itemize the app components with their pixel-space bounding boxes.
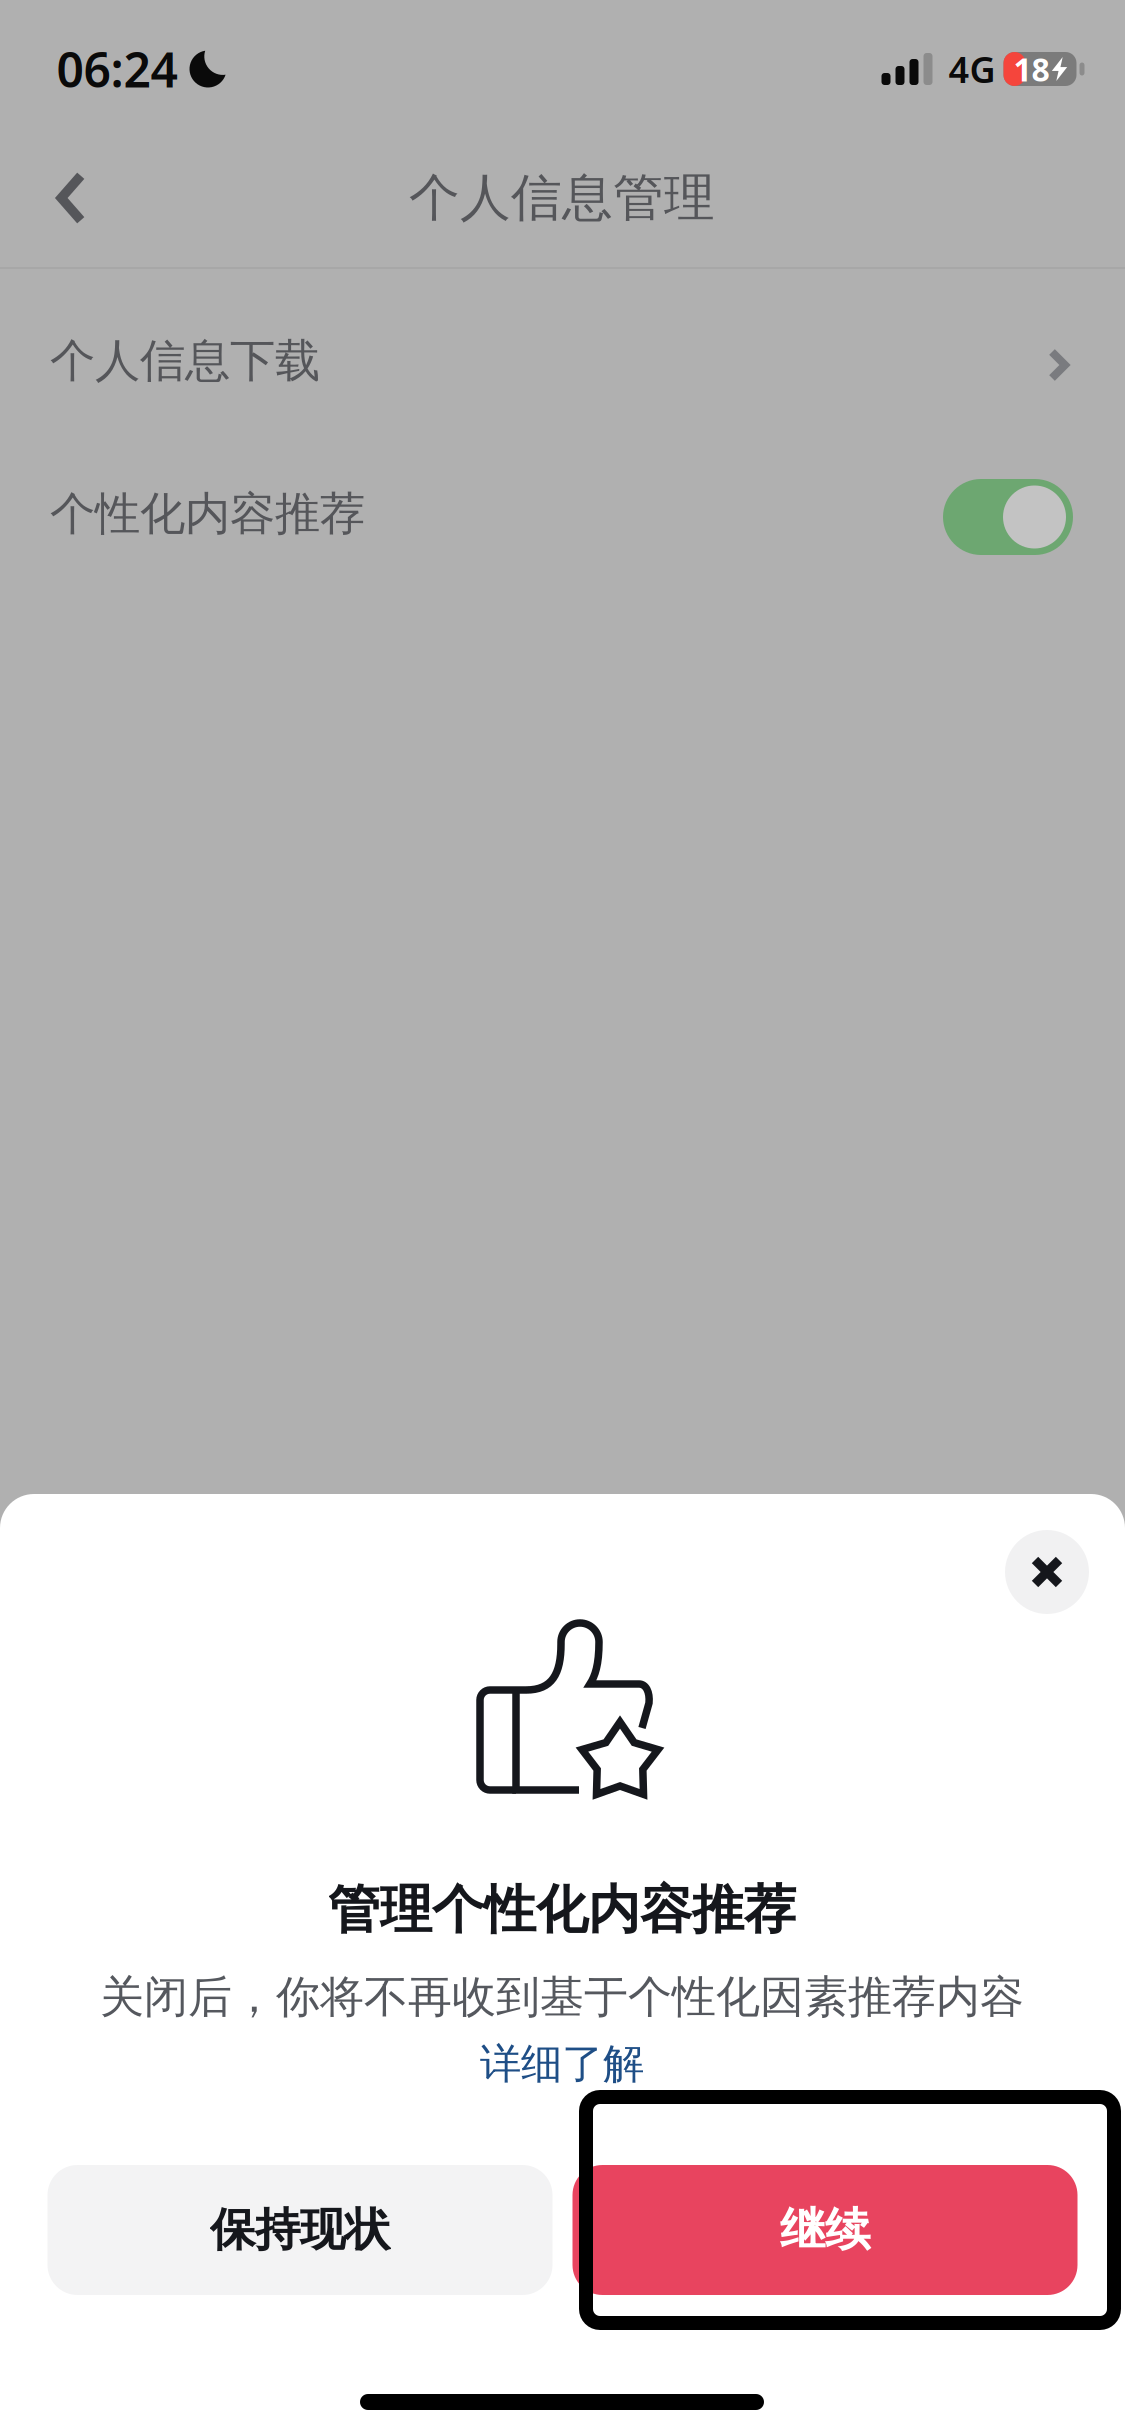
staticText: 关闭后，你将不再收到基于个性化因素推荐内容: [100, 1970, 1024, 2024]
staticText: 06:24: [56, 37, 177, 101]
button[interactable]: 个性化内容推荐: [943, 479, 1073, 555]
button[interactable]: 返回: [23, 150, 119, 246]
staticText: 保持现状: [210, 2202, 390, 2258]
staticText: 18: [1013, 48, 1049, 90]
staticText: 详细了解: [480, 2039, 644, 2089]
staticText: 4G: [948, 45, 995, 93]
button[interactable]: 继续: [572, 2165, 1077, 2295]
staticText: 个性化内容推荐: [50, 486, 365, 542]
staticText: 个人信息管理: [409, 167, 715, 229]
staticText: 继续: [780, 2202, 870, 2258]
staticText: 管理个性化内容推荐: [328, 1878, 796, 1942]
button[interactable]: 关闭: [1005, 1530, 1089, 1614]
button[interactable]: 个人信息下载: [0, 285, 1125, 437]
button[interactable]: 详细了解: [472, 2036, 652, 2092]
button[interactable]: 保持现状: [47, 2165, 552, 2295]
staticText: 个人信息下载: [50, 333, 320, 389]
